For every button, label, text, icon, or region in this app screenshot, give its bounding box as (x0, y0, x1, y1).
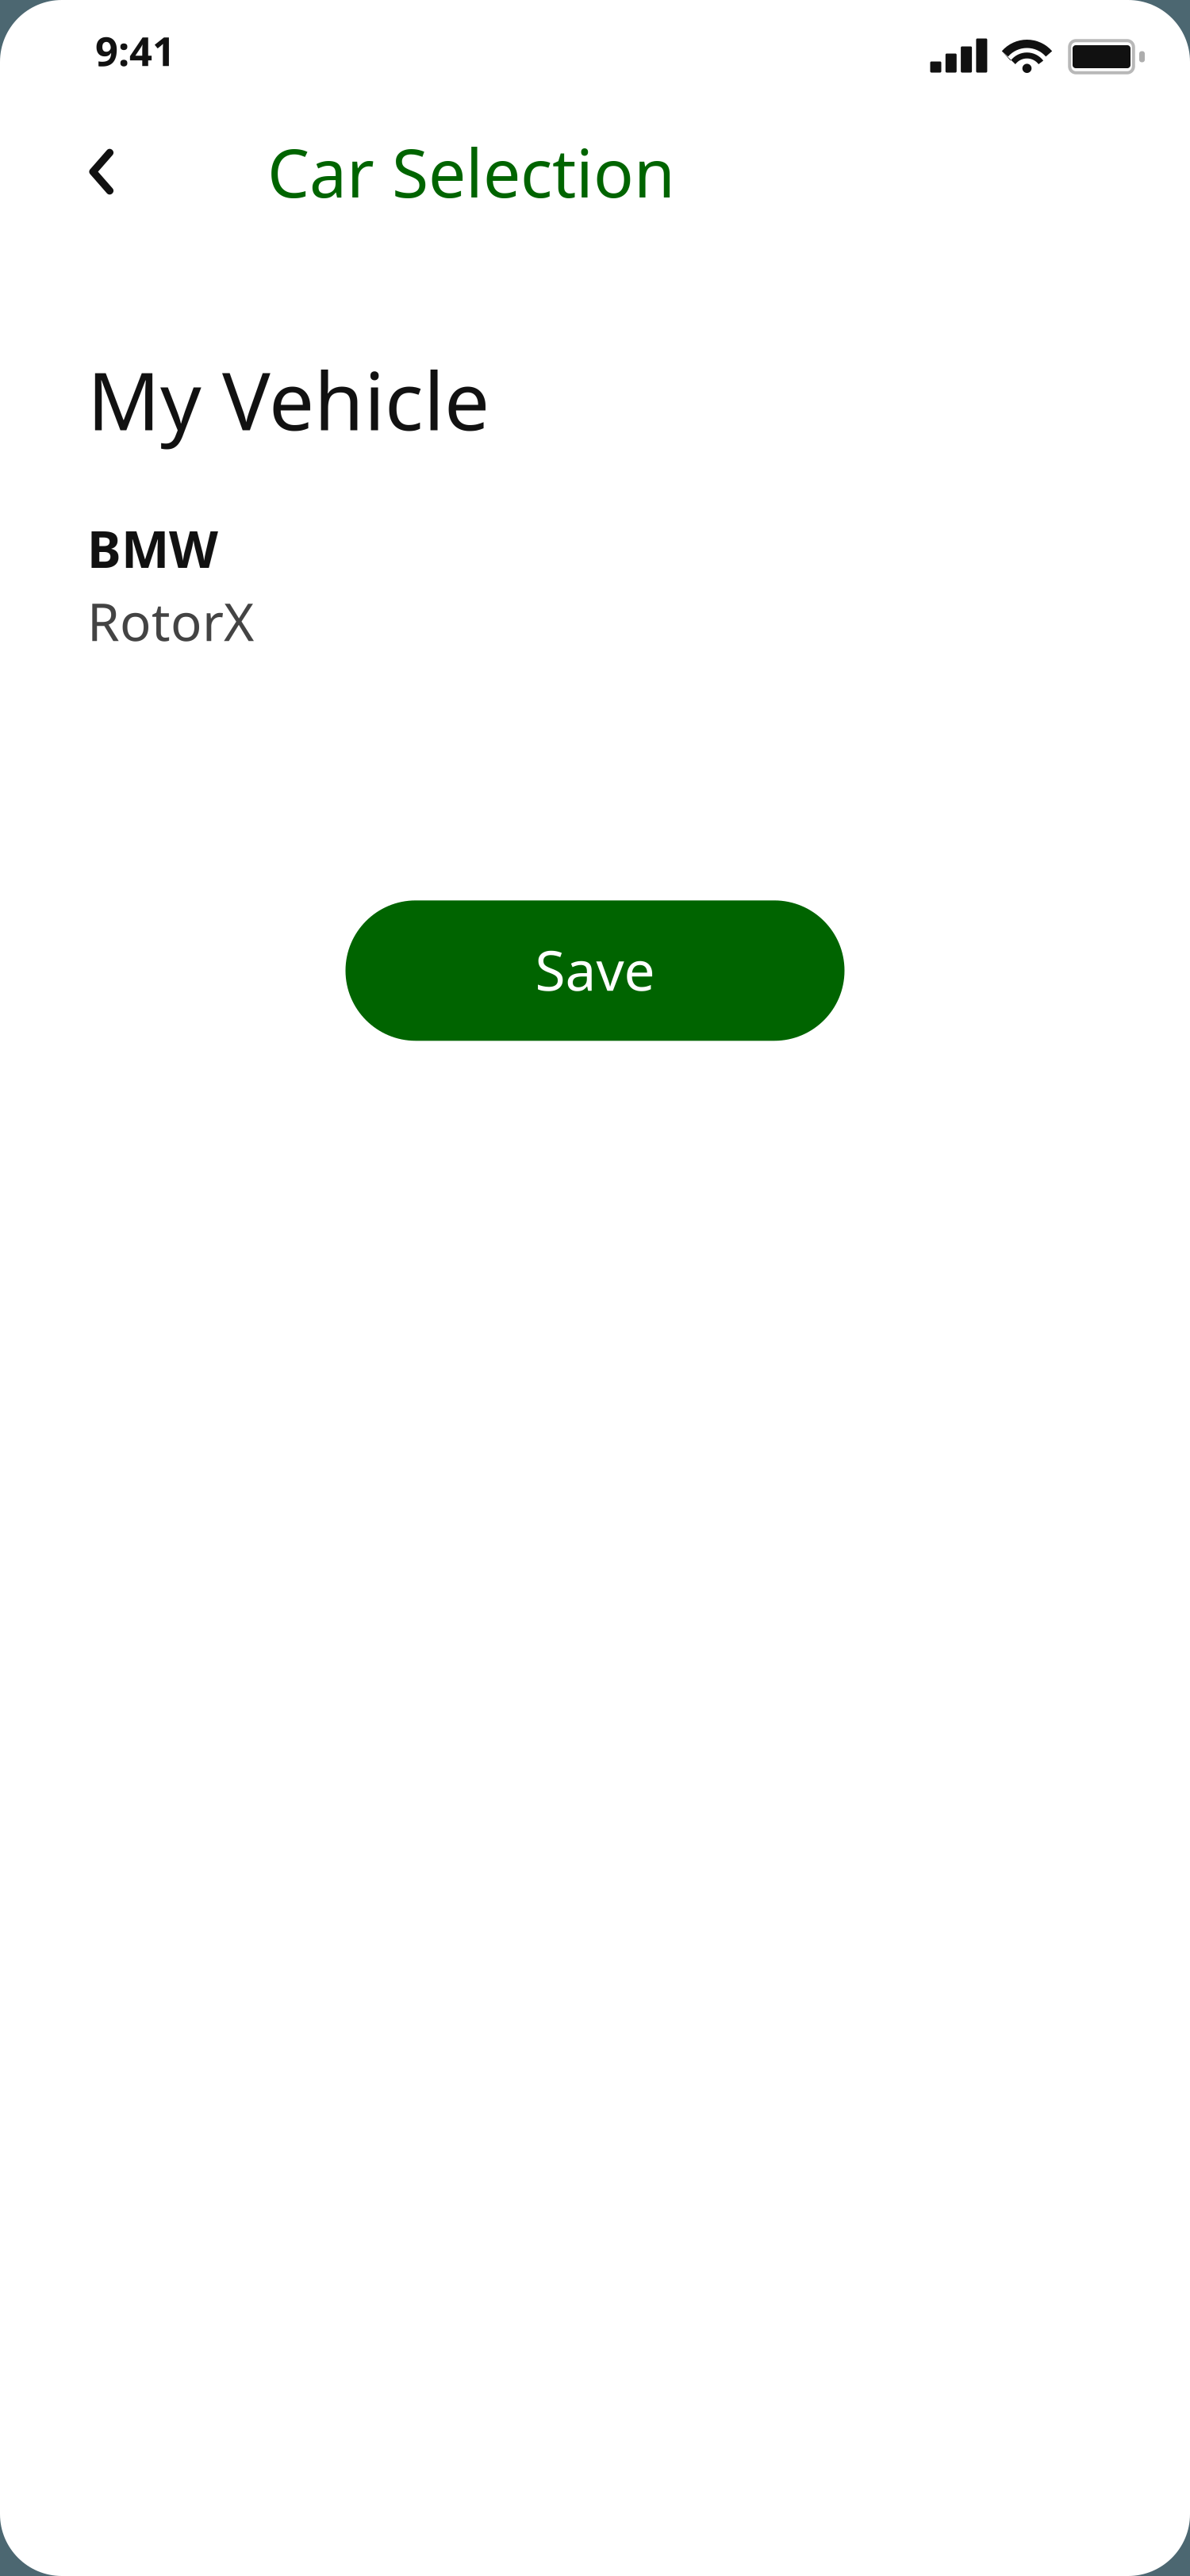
staticText: Save (535, 933, 655, 1006)
staticText: Car Selection (267, 127, 675, 216)
button[interactable]: Back (63, 128, 141, 216)
staticText: 9:41 (95, 24, 175, 77)
button[interactable]: Save (345, 900, 845, 1041)
staticText: RotorX (87, 587, 254, 655)
staticText: My Vehicle (87, 346, 489, 453)
staticText: BMW (87, 514, 218, 582)
